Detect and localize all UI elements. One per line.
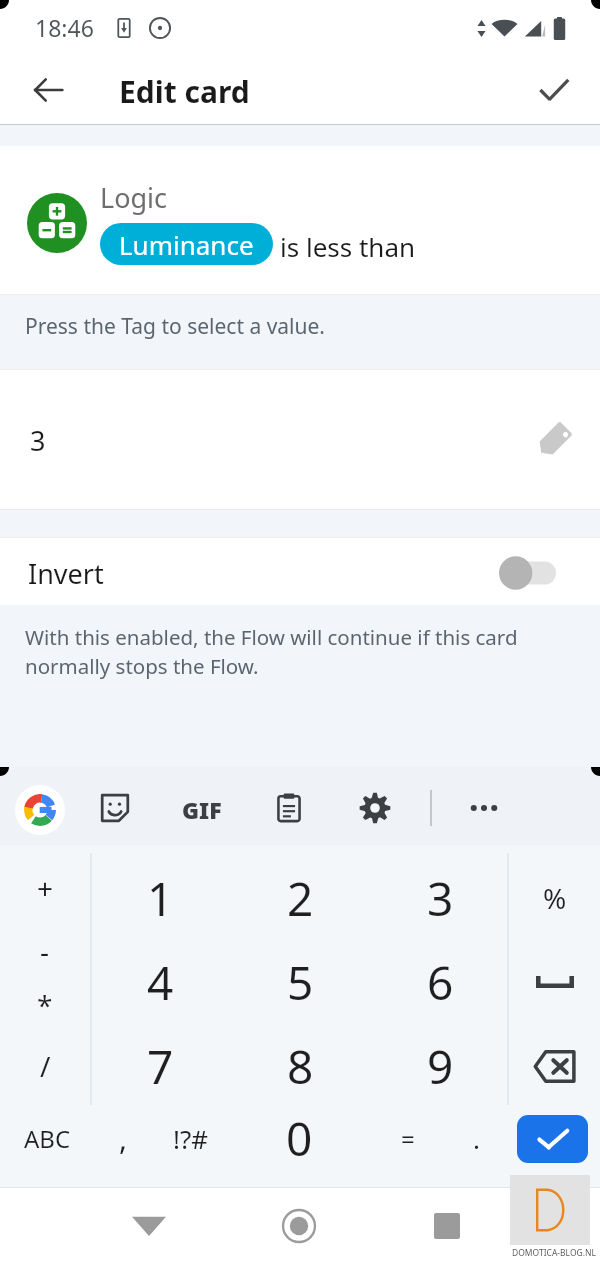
- button[interactable]: 6: [370, 946, 510, 1018]
- button[interactable]: 9: [370, 1030, 510, 1102]
- button[interactable]: 5: [230, 946, 370, 1018]
- staticText: !?#: [173, 1121, 209, 1156]
- button[interactable]: 7: [90, 1030, 230, 1102]
- button[interactable]: ABC: [0, 1105, 94, 1171]
- button[interactable]: -: [0, 921, 90, 981]
- button[interactable]: %: [509, 862, 600, 934]
- button[interactable]: Stickers: [91, 784, 139, 832]
- staticText: 4: [147, 951, 174, 1014]
- button[interactable]: 3: [370, 862, 510, 934]
- button[interactable]: =: [370, 1105, 446, 1171]
- button[interactable]: /: [0, 1036, 90, 1096]
- button[interactable]: Invert: [0, 538, 600, 605]
- staticText: 5: [287, 951, 314, 1014]
- staticText: *: [37, 986, 53, 1024]
- staticText: -: [40, 932, 50, 970]
- staticText: =: [401, 1122, 415, 1155]
- button[interactable]: Recent apps: [417, 1200, 477, 1252]
- button[interactable]: Space: [509, 946, 600, 1018]
- staticText: 6: [427, 951, 454, 1014]
- button[interactable]: 8: [230, 1030, 370, 1102]
- staticText: 3: [30, 422, 46, 459]
- staticText: 7: [147, 1035, 174, 1098]
- button[interactable]: Home: [269, 1200, 329, 1252]
- button[interactable]: Back: [16, 58, 80, 122]
- staticText: is less than: [280, 229, 416, 264]
- button[interactable]: Tag: [534, 420, 574, 460]
- button[interactable]: GIF: [175, 793, 229, 825]
- button[interactable]: More options: [460, 784, 508, 832]
- staticText: %: [543, 879, 567, 917]
- staticText: 3: [427, 867, 454, 930]
- button[interactable]: 2: [230, 862, 370, 934]
- button[interactable]: Back: [119, 1200, 179, 1252]
- staticText: +: [37, 869, 54, 907]
- staticText: ABC: [24, 1122, 71, 1155]
- staticText: Press the Tag to select a value.: [25, 312, 325, 341]
- button[interactable]: Luminance: [100, 223, 273, 265]
- button[interactable]: 3: [0, 371, 600, 509]
- staticText: 0: [286, 1107, 313, 1170]
- button[interactable]: 1: [90, 862, 230, 934]
- button[interactable]: Enter: [517, 1115, 588, 1163]
- button[interactable]: ,: [96, 1105, 150, 1171]
- button[interactable]: 0: [234, 1105, 364, 1171]
- button[interactable]: Settings: [351, 784, 399, 832]
- staticText: Edit card: [119, 71, 250, 112]
- staticText: 9: [427, 1035, 454, 1098]
- button[interactable]: Save: [522, 58, 586, 122]
- button[interactable]: Invert toggle: [498, 556, 556, 590]
- button[interactable]: *: [0, 975, 90, 1035]
- button[interactable]: Google: [15, 785, 65, 835]
- button[interactable]: +: [0, 858, 90, 918]
- button[interactable]: Backspace: [509, 1030, 600, 1102]
- staticText: 8: [287, 1035, 314, 1098]
- button[interactable]: !?#: [152, 1105, 230, 1171]
- staticText: DOMOTICA-BLOG.NL: [512, 1247, 596, 1259]
- button[interactable]: 4: [90, 946, 230, 1018]
- staticText: Invert: [28, 555, 104, 592]
- staticText: With this enabled, the Flow will continu…: [25, 623, 518, 680]
- staticText: GIF: [182, 794, 222, 825]
- staticText: /: [40, 1047, 51, 1085]
- staticText: 18:46: [35, 12, 94, 43]
- button[interactable]: Logic: [0, 146, 600, 294]
- button[interactable]: .: [448, 1105, 504, 1171]
- staticText: Logic: [100, 179, 168, 216]
- button[interactable]: Clipboard: [265, 784, 313, 832]
- staticText: Luminance: [119, 227, 254, 262]
- staticText: ,: [119, 1118, 128, 1159]
- staticText: .: [473, 1121, 480, 1156]
- staticText: 1: [147, 867, 174, 930]
- staticText: 2: [287, 867, 314, 930]
